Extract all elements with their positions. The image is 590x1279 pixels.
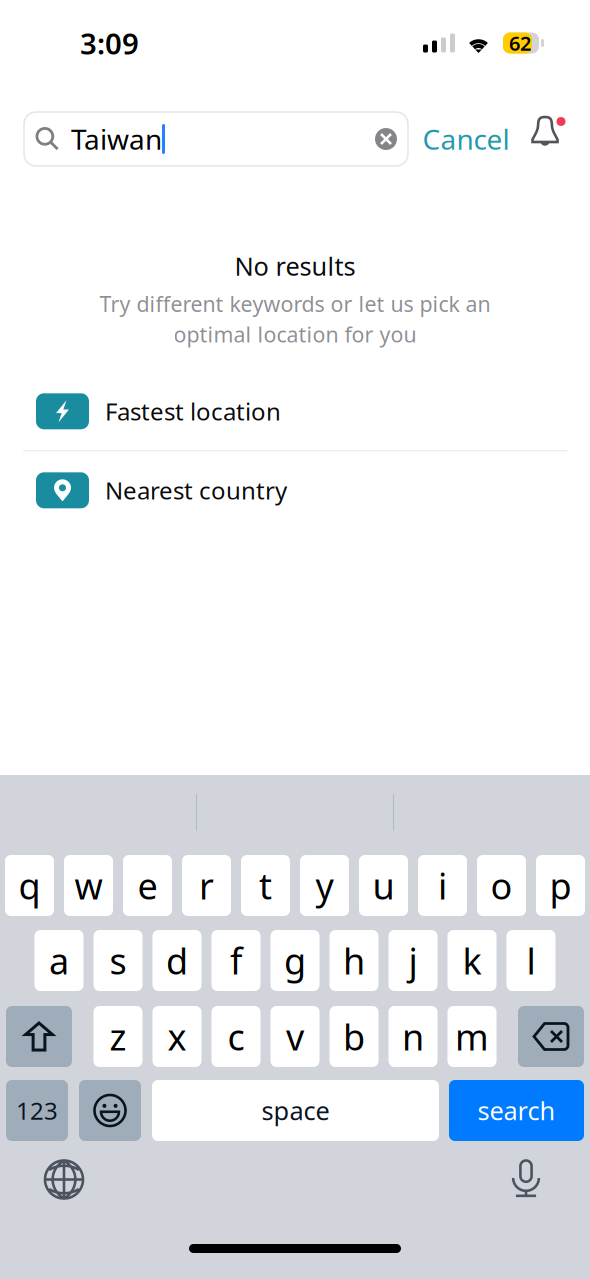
button[interactable]: Clear text <box>368 114 404 164</box>
staticText: o <box>490 862 512 909</box>
button[interactable]: f <box>211 930 260 991</box>
button[interactable]: h <box>329 930 378 991</box>
staticText: w <box>74 862 102 909</box>
button[interactable]: s <box>93 930 142 991</box>
staticText: g <box>284 937 306 984</box>
button[interactable]: search <box>449 1080 584 1141</box>
staticText: j <box>408 937 417 984</box>
button[interactable]: u <box>359 855 408 916</box>
staticText: 3:09 <box>80 23 139 62</box>
staticText: m <box>455 1013 489 1060</box>
button[interactable]: o <box>477 855 526 916</box>
staticText: optimal location for you <box>173 320 416 348</box>
button[interactable]: r <box>182 855 231 916</box>
staticText: a <box>49 937 69 984</box>
button[interactable]: z <box>93 1006 142 1067</box>
staticText: n <box>402 1013 424 1060</box>
staticText: 123 <box>16 1095 58 1126</box>
button[interactable]: e <box>123 855 172 916</box>
staticText: h <box>343 937 365 984</box>
button[interactable]: Nearest country <box>0 451 590 529</box>
staticText: e <box>137 862 157 909</box>
button[interactable]: t <box>241 855 290 916</box>
staticText: s <box>109 937 126 984</box>
staticText: u <box>372 862 394 909</box>
button[interactable]: n <box>388 1006 437 1067</box>
button[interactable]: g <box>270 930 319 991</box>
staticText: Try different keywords or let us pick an <box>99 290 490 318</box>
button[interactable]: 123 <box>6 1080 68 1141</box>
staticText: space <box>261 1094 329 1127</box>
staticText: Fastest location <box>105 395 281 427</box>
button[interactable]: a <box>34 930 83 991</box>
button[interactable]: Shift <box>6 1006 72 1067</box>
button[interactable]: Fastest location <box>0 372 590 450</box>
staticText: y <box>315 862 333 909</box>
button[interactable]: Emoji <box>79 1080 141 1141</box>
staticText: x <box>167 1013 186 1060</box>
staticText: t <box>259 862 272 909</box>
button[interactable]: v <box>270 1006 319 1067</box>
button[interactable]: m <box>447 1006 496 1067</box>
button[interactable]: p <box>536 855 585 916</box>
staticText: d <box>166 937 188 984</box>
staticText: v <box>286 1013 304 1060</box>
staticText: 62 <box>509 30 531 56</box>
button[interactable]: d <box>152 930 201 991</box>
button[interactable]: k <box>447 930 496 991</box>
staticText: No results <box>234 249 355 283</box>
staticText: Nearest country <box>105 474 287 506</box>
button[interactable]: Delete <box>518 1006 584 1067</box>
button[interactable]: Cancel <box>408 112 524 166</box>
staticText: f <box>230 937 242 984</box>
button[interactable]: w <box>64 855 113 916</box>
staticText: Taiwan <box>71 120 162 158</box>
staticText: z <box>109 1013 126 1060</box>
button[interactable]: i <box>418 855 467 916</box>
staticText: Cancel <box>422 120 509 158</box>
button[interactable]: space <box>152 1080 439 1141</box>
staticText: c <box>227 1013 244 1060</box>
staticText: b <box>343 1013 365 1060</box>
button[interactable]: x <box>152 1006 201 1067</box>
staticText: r <box>199 862 214 909</box>
button[interactable]: Notifications <box>530 112 567 166</box>
button[interactable]: y <box>300 855 349 916</box>
staticText: l <box>526 937 535 984</box>
button[interactable]: b <box>329 1006 378 1067</box>
button[interactable]: Dictation <box>502 1152 550 1206</box>
button[interactable]: c <box>211 1006 260 1067</box>
staticText: i <box>438 862 447 909</box>
staticText: q <box>18 862 40 909</box>
staticText: p <box>549 862 571 909</box>
button[interactable]: Switch keyboard <box>40 1152 88 1206</box>
button[interactable]: j <box>388 930 437 991</box>
staticText: search <box>477 1094 555 1127</box>
button[interactable]: q <box>5 855 54 916</box>
staticText: k <box>462 937 481 984</box>
button[interactable]: l <box>506 930 555 991</box>
